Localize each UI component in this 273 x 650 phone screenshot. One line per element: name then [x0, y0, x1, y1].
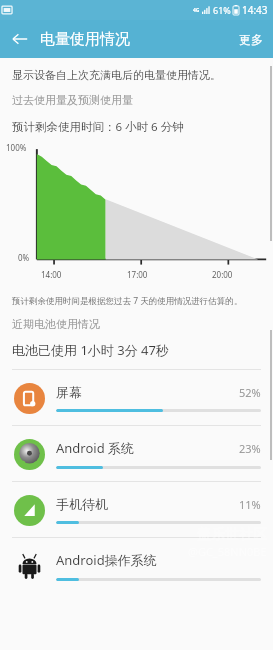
staticText: 手机待机 [56, 496, 239, 512]
staticText: 11% [239, 497, 261, 512]
staticText: 更多 [239, 32, 263, 47]
staticText: 14:00 [41, 269, 62, 280]
staticText: 4G [193, 7, 200, 14]
staticText: 屏幕 [56, 384, 239, 400]
staticText: 17:00 [127, 269, 148, 280]
staticText: 过去使用量及预测使用量 [12, 93, 133, 107]
staticText: 电池已使用 1小时 3分 47秒 [12, 341, 169, 359]
staticText: 23% [239, 441, 261, 456]
staticText: 20:00 [212, 269, 233, 280]
staticText: 近期电池使用情况 [12, 317, 100, 331]
button[interactable]: 更多 [233, 28, 269, 51]
staticText: 100% [6, 142, 27, 153]
staticText: 预计剩余使用时间是根据您过去 7 天的使用情况进行估算的。 [12, 295, 243, 307]
button[interactable]: 屏幕 [0, 370, 273, 425]
button[interactable]: Android 系统 [0, 426, 273, 481]
staticText: 0% [18, 252, 30, 263]
button[interactable]: Back [6, 25, 34, 53]
staticText: 电量使用情况 [40, 30, 130, 49]
staticText: Android操作系统 [56, 551, 261, 569]
staticText: 52% [239, 385, 261, 400]
staticText: 预计剩余使用时间：6 小时 6 分钟 [12, 119, 184, 135]
button[interactable]: Android操作系统 [0, 538, 273, 593]
staticText: Android 系统 [56, 439, 239, 457]
button[interactable]: 手机待机 [0, 482, 273, 537]
staticText: 61% [213, 4, 231, 16]
staticText: 14:43 [242, 3, 268, 17]
staticText: 盖乐世社区 [197, 526, 267, 544]
staticText: 显示设备自上次充满电后的电量使用情况。 [12, 68, 221, 82]
